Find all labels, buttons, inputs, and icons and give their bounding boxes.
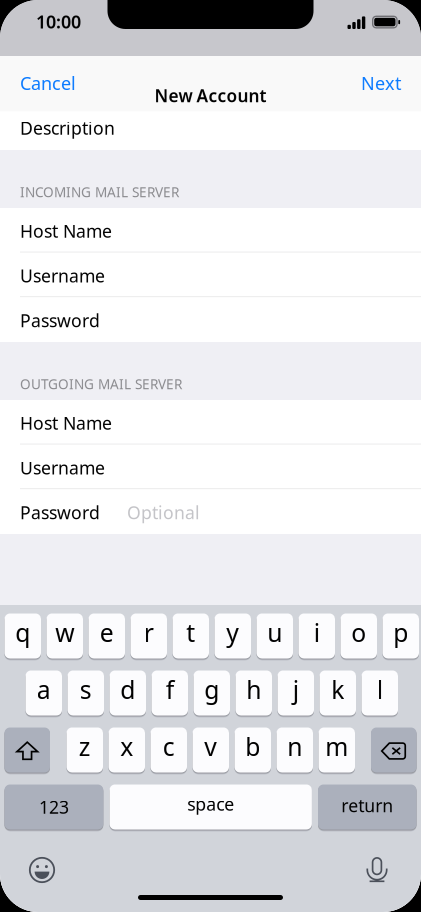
staticText: l — [377, 673, 383, 706]
staticText: Username — [20, 264, 105, 288]
staticText: Password — [20, 308, 100, 332]
button[interactable]: h — [235, 671, 272, 717]
button[interactable]: return — [318, 785, 416, 831]
button[interactable]: q — [4, 614, 41, 660]
staticText: 123 — [39, 795, 69, 819]
staticText: Next — [361, 71, 401, 95]
button[interactable]: c — [150, 728, 187, 774]
staticText: u — [267, 616, 282, 649]
button[interactable]: Username — [0, 253, 421, 297]
staticText: OUTGOING MAIL SERVER — [20, 375, 182, 393]
staticText: Username — [20, 456, 105, 480]
button[interactable]: s — [67, 671, 104, 717]
button[interactable]: l — [361, 671, 398, 717]
staticText: 10:00 — [36, 9, 81, 34]
staticText: Cancel — [20, 71, 76, 95]
staticText: m — [325, 730, 348, 763]
staticText: e — [100, 616, 114, 649]
staticText: return — [341, 793, 393, 817]
staticText: c — [163, 730, 175, 763]
staticText: k — [331, 673, 344, 706]
staticText: New Account — [154, 84, 266, 107]
button[interactable]: i — [298, 614, 335, 660]
staticText: space — [187, 792, 234, 816]
button[interactable]: Password — [0, 489, 421, 534]
button[interactable]: w — [46, 614, 83, 660]
staticText: Optional — [127, 500, 200, 524]
button[interactable]: Password — [0, 297, 421, 342]
button[interactable]: f — [151, 671, 188, 717]
button[interactable]: k — [319, 671, 356, 717]
button[interactable]: b — [234, 728, 271, 774]
button[interactable]: Next — [291, 72, 421, 94]
staticText: g — [204, 673, 219, 706]
button[interactable]: a — [25, 671, 62, 717]
button[interactable]: j — [277, 671, 314, 717]
button[interactable]: Dictation — [366, 857, 388, 882]
button[interactable]: 123 — [4, 785, 103, 831]
staticText: INCOMING MAIL SERVER — [20, 183, 179, 201]
button[interactable]: z — [66, 728, 103, 774]
button[interactable]: o — [340, 614, 377, 660]
staticText: x — [120, 730, 133, 763]
staticText: w — [55, 616, 74, 649]
button[interactable]: space — [109, 785, 312, 831]
button[interactable]: t — [172, 614, 209, 660]
staticText: y — [226, 616, 239, 649]
staticText: t — [186, 616, 195, 649]
button[interactable]: Host Name — [0, 400, 421, 445]
staticText: q — [15, 616, 30, 649]
staticText: d — [120, 673, 135, 706]
button[interactable]: p — [382, 614, 419, 660]
staticText: s — [80, 673, 92, 706]
button[interactable]: d — [109, 671, 146, 717]
staticText: Password — [20, 500, 100, 524]
staticText: i — [314, 616, 320, 649]
button[interactable]: Cancel — [0, 72, 130, 94]
staticText: j — [293, 673, 299, 706]
staticText: Host Name — [20, 411, 112, 435]
staticText: p — [393, 616, 408, 649]
staticText: v — [204, 730, 217, 763]
staticText: h — [246, 673, 261, 706]
button[interactable]: v — [192, 728, 229, 774]
staticText: f — [166, 673, 174, 706]
button[interactable]: Username — [0, 445, 421, 489]
button[interactable]: x — [108, 728, 145, 774]
button[interactable]: Shift — [4, 728, 50, 774]
button[interactable]: Delete — [371, 728, 416, 774]
staticText: r — [144, 616, 154, 649]
button[interactable]: m — [318, 728, 355, 774]
button[interactable]: Emoji keyboard — [29, 857, 55, 883]
button[interactable]: Description — [0, 111, 421, 150]
staticText: n — [287, 730, 302, 763]
staticText: Description — [20, 116, 115, 140]
button[interactable]: r — [130, 614, 167, 660]
button[interactable]: e — [88, 614, 125, 660]
staticText: z — [79, 730, 91, 763]
staticText: a — [37, 673, 51, 706]
button[interactable]: u — [256, 614, 293, 660]
staticText: b — [245, 730, 260, 763]
button[interactable]: y — [214, 614, 251, 660]
staticText: Host Name — [20, 219, 112, 243]
staticText: o — [351, 616, 366, 649]
button[interactable]: n — [276, 728, 313, 774]
button[interactable]: Host Name — [0, 208, 421, 253]
button[interactable]: g — [193, 671, 230, 717]
